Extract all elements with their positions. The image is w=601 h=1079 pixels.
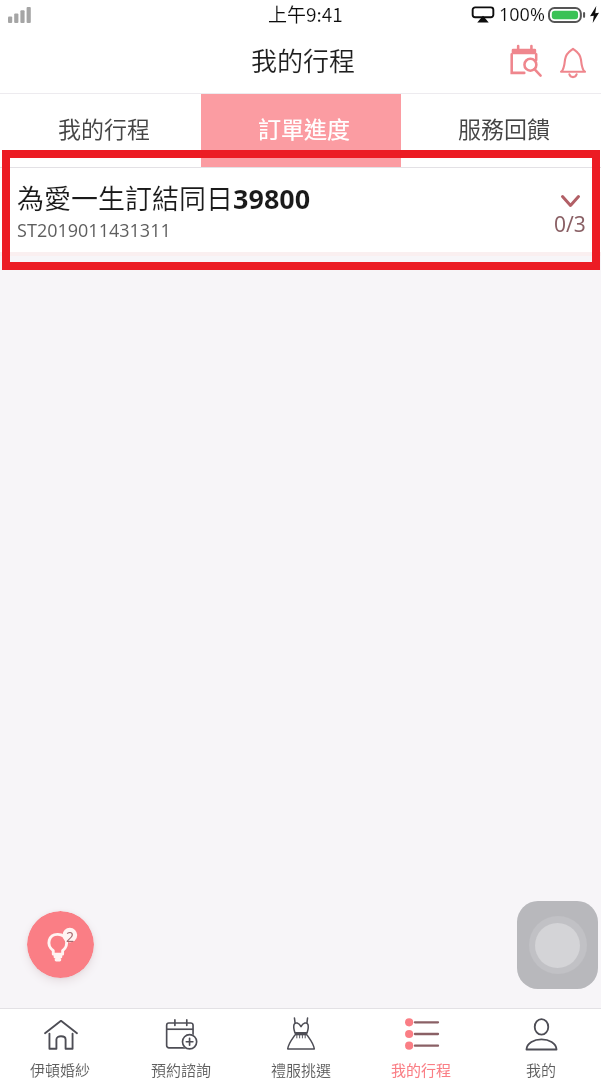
staticText: ST2019011431311 xyxy=(17,218,171,243)
staticText: 0/3 xyxy=(554,210,586,239)
button[interactable]: AssistiveTouch xyxy=(517,901,598,989)
button[interactable]: 預約諮詢 xyxy=(121,1009,241,1079)
button[interactable]: 伊頓婚紗 xyxy=(0,1009,121,1079)
staticText: 服務回饋 xyxy=(458,111,550,144)
button[interactable]: Search schedule xyxy=(504,39,550,85)
button[interactable]: 我的 xyxy=(481,1009,601,1079)
staticText: 我的行程 xyxy=(391,1059,452,1079)
button[interactable]: 為愛一生訂結同日39800 xyxy=(0,168,601,256)
staticText: 預約諮詢 xyxy=(151,1059,212,1079)
button[interactable]: 我的行程 xyxy=(0,94,201,167)
staticText: 伊頓婚紗 xyxy=(30,1059,91,1079)
staticText: 禮服挑選 xyxy=(271,1059,332,1079)
button[interactable]: Tips xyxy=(27,911,94,978)
button[interactable]: Notifications xyxy=(550,39,596,85)
staticText: 上午9:41 xyxy=(268,0,343,28)
button[interactable]: 訂單進度 xyxy=(201,94,401,167)
staticText: 為愛一生訂結同日39800 xyxy=(17,178,311,217)
button[interactable]: 禮服挑選 xyxy=(241,1009,361,1079)
button[interactable]: 服務回饋 xyxy=(401,94,601,167)
staticText: 2 xyxy=(66,927,75,946)
button[interactable]: 我的行程 xyxy=(361,1009,481,1079)
staticText: 訂單進度 xyxy=(258,111,350,144)
staticText: 我的 xyxy=(526,1059,557,1079)
staticText: 100% xyxy=(499,2,545,27)
staticText: 我的行程 xyxy=(58,111,150,144)
staticText: 我的行程 xyxy=(251,41,356,79)
